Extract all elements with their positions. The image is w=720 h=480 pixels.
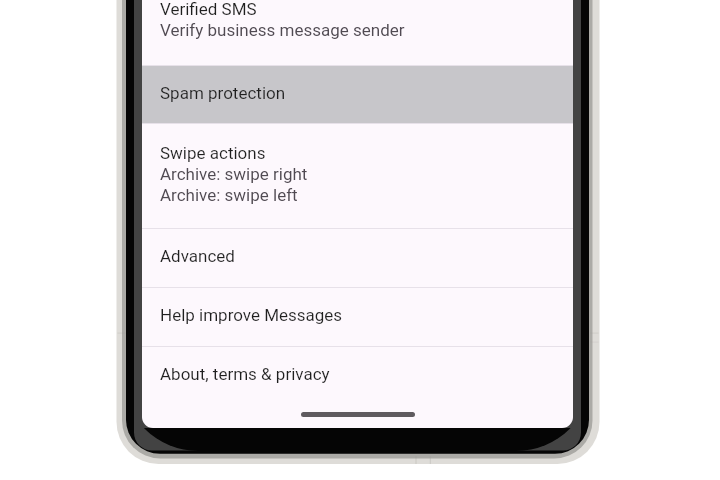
staticText: Archive: swipe left bbox=[160, 184, 298, 205]
staticText: About, terms & privacy bbox=[160, 363, 330, 384]
button[interactable]: Advanced bbox=[142, 229, 573, 287]
staticText: Verify business message sender bbox=[160, 19, 405, 40]
button[interactable]: About, terms & privacy bbox=[142, 347, 573, 405]
button[interactable]: Spam protection bbox=[142, 66, 573, 123]
staticText: Help improve Messages bbox=[160, 304, 343, 325]
button[interactable]: Help improve Messages bbox=[142, 288, 573, 346]
staticText: Verified SMS bbox=[160, 0, 257, 19]
staticText: Advanced bbox=[160, 245, 235, 266]
staticText: Archive: swipe right bbox=[160, 163, 308, 184]
staticText: Spam protection bbox=[160, 82, 286, 103]
button[interactable]: Verified SMS bbox=[142, 0, 573, 65]
button[interactable]: Swipe actions bbox=[142, 124, 573, 228]
button[interactable]: Home bbox=[301, 412, 415, 417]
staticText: Swipe actions bbox=[160, 142, 266, 163]
